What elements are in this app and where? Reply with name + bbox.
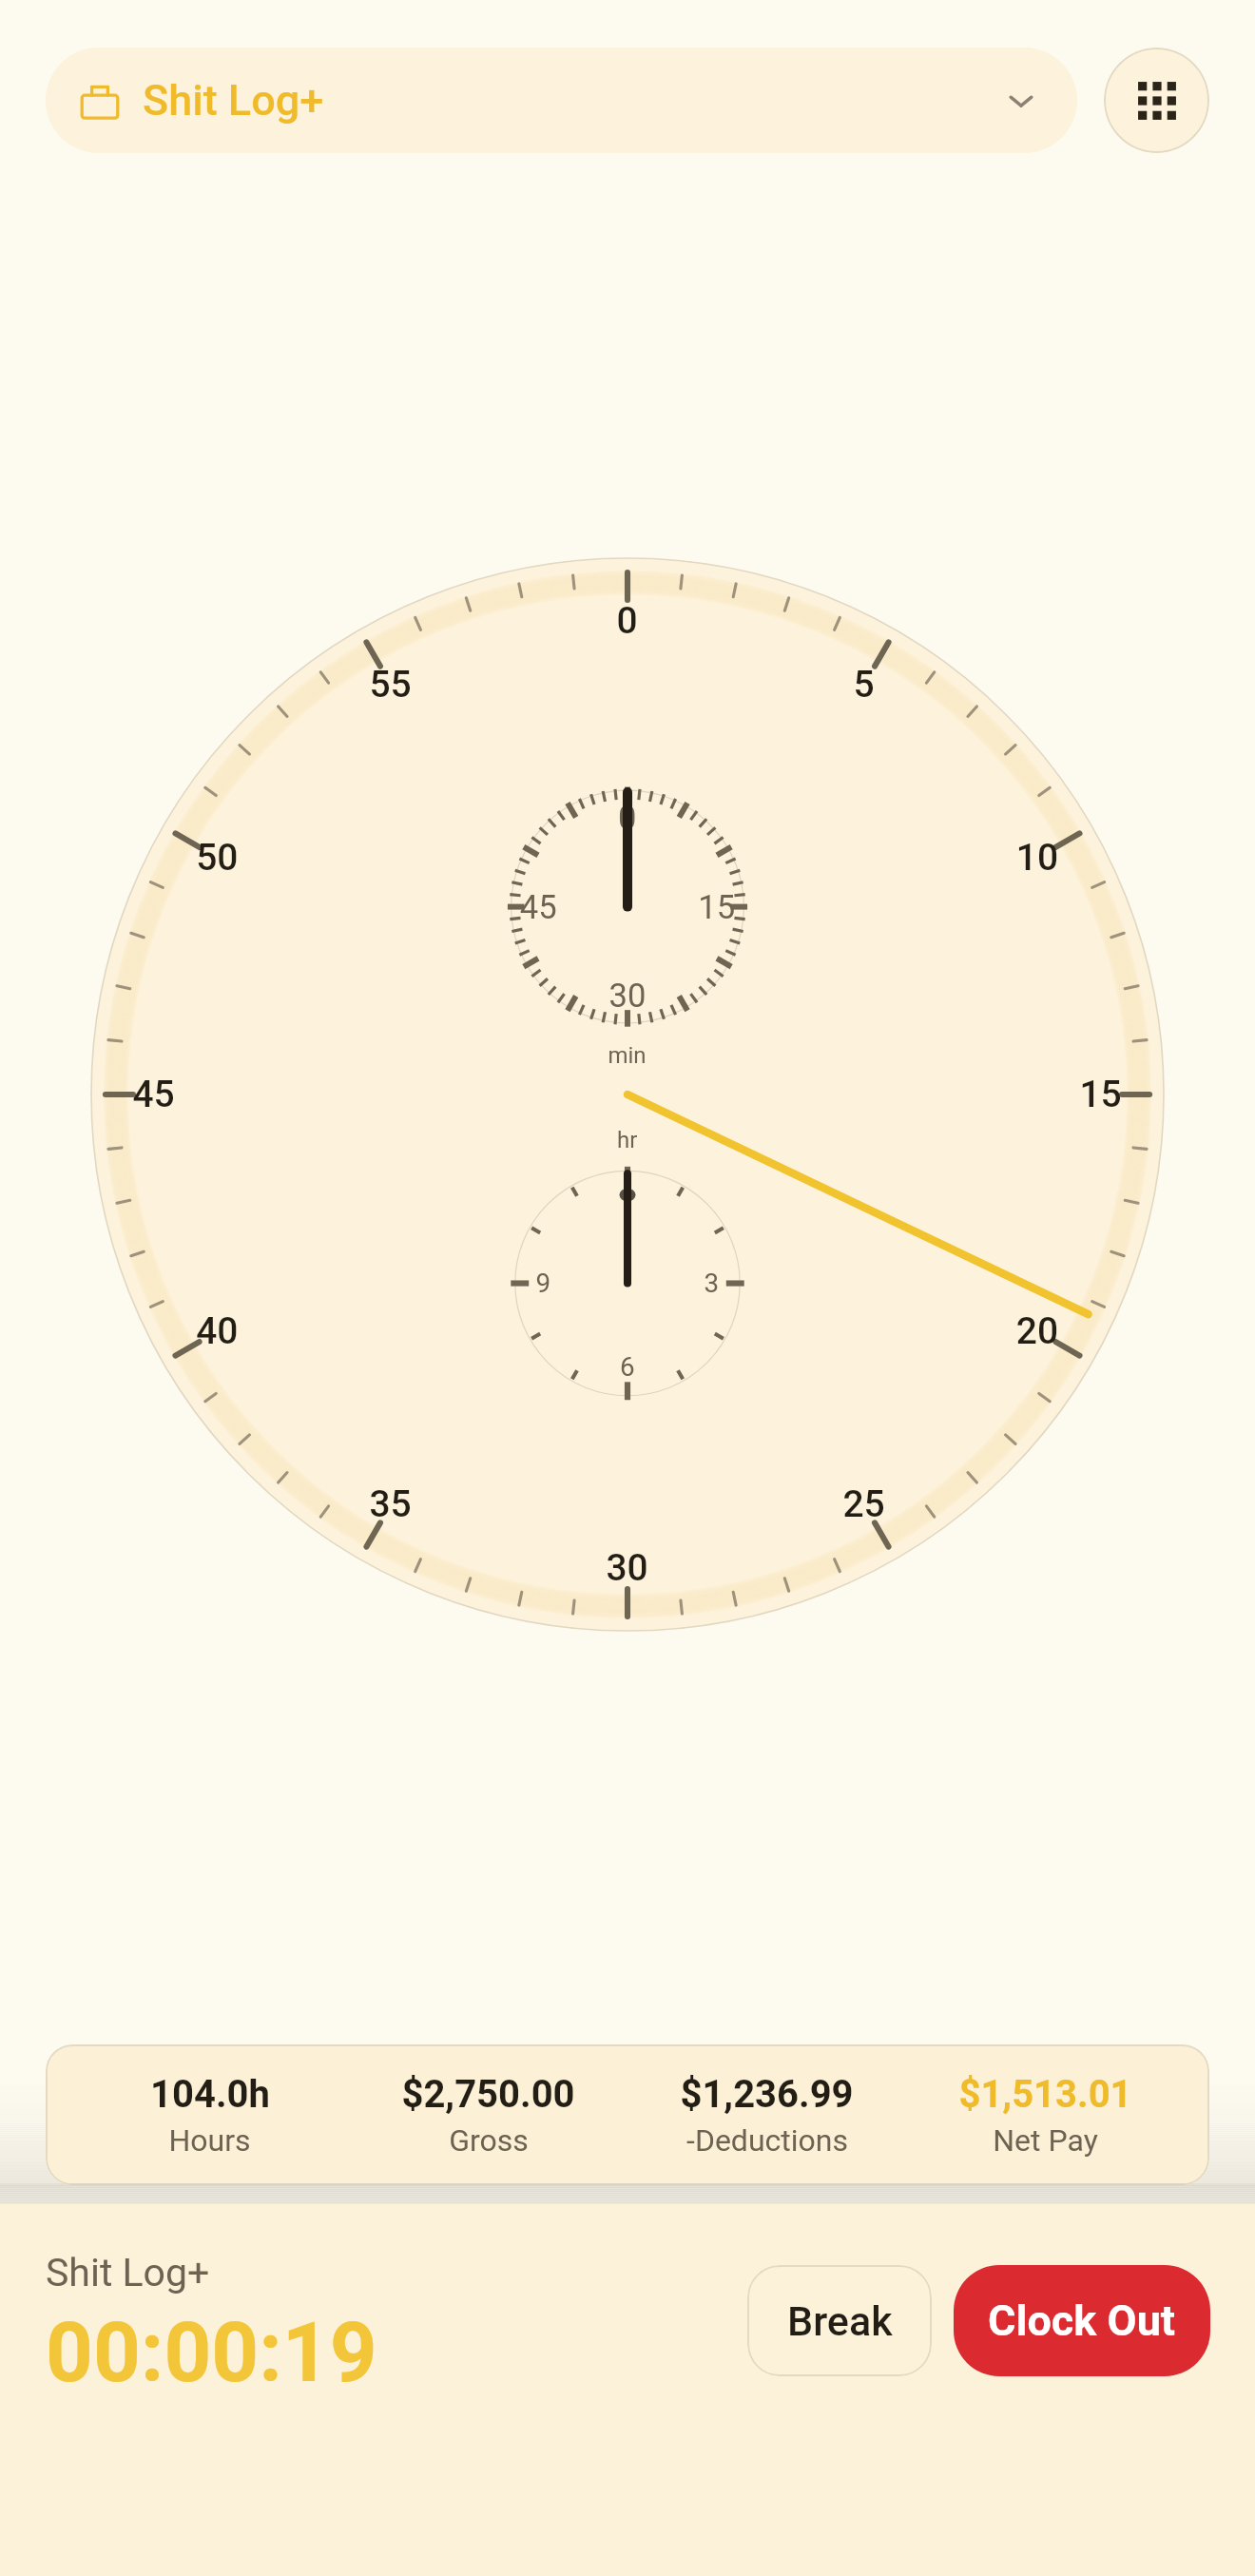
button[interactable]: 104.0h	[46, 2044, 1209, 2185]
button[interactable]: Shit Log+	[46, 48, 1077, 153]
staticText: 00:00:19	[46, 2304, 377, 2401]
staticText: 104.0h	[150, 2072, 270, 2117]
button[interactable]: Break	[747, 2265, 932, 2376]
staticText: Hours	[168, 2122, 251, 2159]
staticText: Clock Out	[988, 2295, 1176, 2346]
staticText: Net Pay	[993, 2122, 1098, 2159]
staticText: $2,750.00	[401, 2072, 575, 2117]
staticText: $1,236.99	[680, 2072, 854, 2117]
button[interactable]: Apps	[1104, 48, 1209, 153]
staticText: Shit Log+	[46, 2250, 210, 2295]
staticText: Break	[787, 2297, 893, 2345]
staticText: $1,513.01	[958, 2072, 1132, 2117]
button[interactable]: Clock Out	[954, 2265, 1210, 2376]
staticText: -Deductions	[686, 2122, 848, 2159]
staticText: Shit Log+	[143, 75, 324, 126]
staticText: Gross	[449, 2122, 529, 2159]
